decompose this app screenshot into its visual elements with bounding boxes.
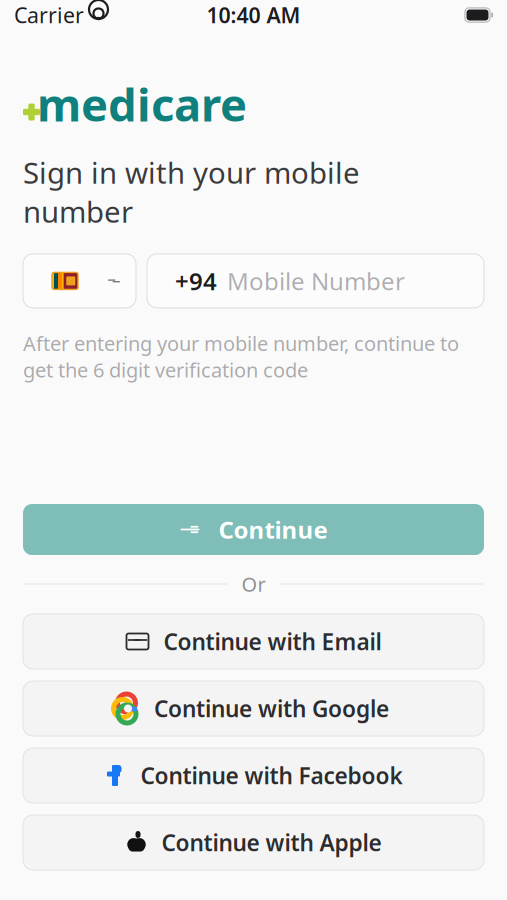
staticText: Continue with Google (154, 693, 389, 723)
staticText: Continue (218, 514, 327, 545)
staticText: medicare (37, 74, 247, 134)
button[interactable]: Continue with Email (23, 614, 484, 669)
button[interactable]: Continue with Facebook (23, 748, 484, 803)
staticText: After entering your mobile number, conti… (23, 330, 459, 383)
staticText: Carrier (14, 1, 84, 29)
staticText: 10:40 AM (206, 1, 300, 29)
button[interactable]: Select country code, Sri Lanka +94 (23, 254, 136, 308)
staticText: Sign in with your mobile number (23, 153, 360, 231)
staticText: Mobile Number (227, 265, 405, 297)
staticText: Continue with Facebook (140, 760, 402, 790)
staticText: Continue with Apple (161, 827, 381, 857)
staticText: Or (241, 571, 265, 597)
button[interactable]: Mobile Number (147, 254, 484, 308)
staticText: Continue with Email (163, 626, 381, 656)
button[interactable]: Continue (23, 504, 484, 555)
button[interactable]: Continue with Google (23, 681, 484, 736)
button[interactable]: Continue with Apple (23, 815, 484, 870)
staticText: +94 (175, 265, 217, 297)
